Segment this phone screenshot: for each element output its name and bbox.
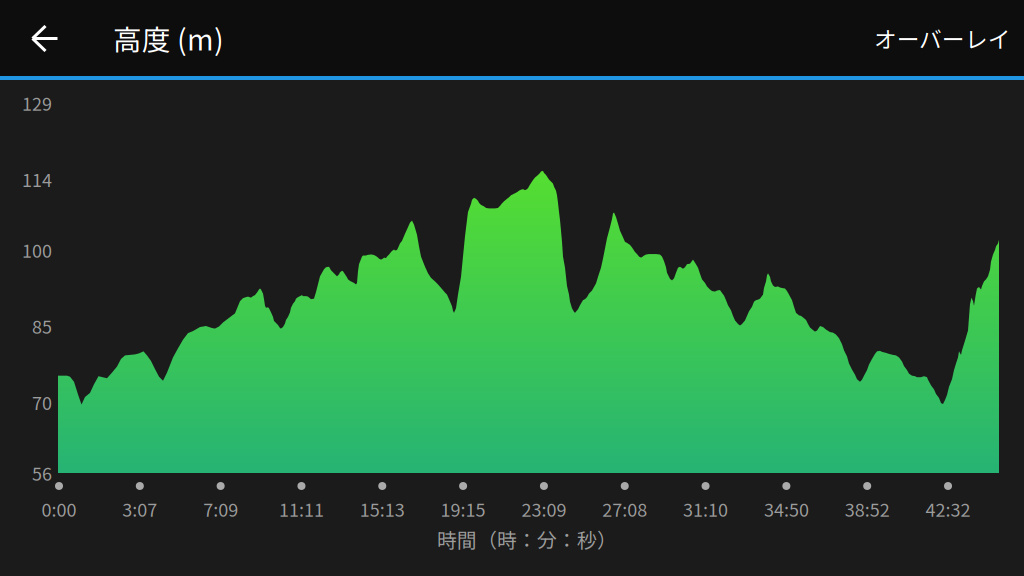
staticText: 高度 (m)	[113, 17, 224, 59]
staticText: 15:13	[360, 496, 405, 522]
staticText: 31:10	[683, 496, 728, 522]
staticText: 100	[22, 237, 52, 263]
staticText: 114	[22, 166, 52, 192]
staticText: 0:00	[41, 496, 76, 522]
button[interactable]: オーバーレイ	[874, 22, 1024, 54]
staticText: 56	[32, 460, 52, 486]
button[interactable]: Back	[0, 0, 92, 77]
staticText: 11:11	[279, 496, 324, 522]
staticText: 23:09	[521, 496, 566, 522]
staticText: 129	[22, 90, 52, 116]
staticText: 19:15	[441, 496, 486, 522]
staticText: 85	[32, 313, 52, 339]
staticText: 38:52	[845, 496, 890, 522]
staticText: オーバーレイ	[874, 22, 1011, 54]
staticText: 7:09	[203, 496, 238, 522]
staticText: 時間（時：分：秒）	[437, 524, 617, 553]
staticText: 27:08	[602, 496, 647, 522]
staticText: 42:32	[925, 496, 970, 522]
staticText: 70	[32, 389, 52, 415]
staticText: 3:07	[122, 496, 157, 522]
staticText: 34:50	[764, 496, 809, 522]
